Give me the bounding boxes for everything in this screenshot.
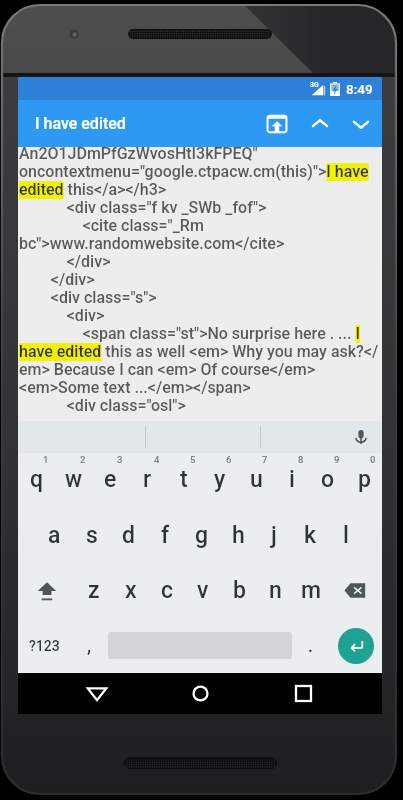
button[interactable]: z: [75, 563, 112, 618]
button[interactable]: v: [185, 563, 221, 618]
staticText: m: [301, 577, 322, 604]
staticText: c: [161, 577, 174, 604]
staticText: I have edited: [35, 114, 126, 133]
staticText: 4: [154, 454, 160, 465]
staticText: p: [358, 466, 371, 493]
staticText: 8: [298, 454, 304, 465]
button[interactable]: s: [73, 508, 110, 563]
staticText: j: [271, 522, 277, 549]
staticText: e: [104, 466, 117, 493]
button[interactable]: c: [149, 563, 185, 618]
staticText: 3G: [310, 81, 319, 89]
button[interactable]: a: [36, 508, 73, 563]
staticText: 5: [190, 454, 196, 465]
staticText: i: [289, 466, 295, 493]
button[interactable]: g: [184, 508, 220, 563]
button[interactable]: 9: [310, 453, 346, 508]
staticText: .: [308, 635, 314, 656]
staticText: y: [214, 466, 226, 493]
staticText: 6: [226, 454, 232, 465]
button[interactable]: 4: [129, 453, 166, 508]
staticText: q: [30, 466, 44, 493]
button[interactable]: 6: [202, 453, 238, 508]
button[interactable]: m: [293, 563, 329, 618]
staticText: 2: [80, 454, 86, 465]
button[interactable]: l: [328, 508, 364, 563]
staticText: 7: [262, 454, 268, 465]
button[interactable]: Shift: [18, 563, 75, 618]
staticText: x: [125, 577, 137, 604]
staticText: u: [250, 466, 263, 493]
staticText: w: [65, 466, 83, 493]
button[interactable]: b: [221, 563, 257, 618]
staticText: k: [304, 522, 316, 549]
button[interactable]: f: [147, 508, 184, 563]
staticText: 0: [370, 454, 376, 465]
button[interactable]: ?123: [18, 618, 70, 673]
button[interactable]: 8: [274, 453, 310, 508]
button[interactable]: j: [256, 508, 292, 563]
button[interactable]: 1: [18, 453, 55, 508]
button[interactable]: k: [292, 508, 328, 563]
button[interactable]: Enter: [338, 628, 374, 664]
button[interactable]: Find next: [338, 101, 384, 147]
button[interactable]: 5: [166, 453, 202, 508]
button[interactable]: 2: [55, 453, 92, 508]
button[interactable]: n: [257, 563, 293, 618]
button[interactable]: x: [112, 563, 149, 618]
staticText: ,: [87, 635, 92, 656]
button[interactable]: 7: [238, 453, 274, 508]
staticText: o: [321, 466, 335, 493]
staticText: ?123: [29, 638, 60, 654]
button[interactable]: Home: [174, 673, 226, 714]
staticText: 3: [117, 454, 123, 465]
button[interactable]: h: [220, 508, 256, 563]
button[interactable]: Backspace: [329, 563, 382, 618]
button[interactable]: .: [292, 618, 330, 673]
button[interactable]: d: [110, 508, 147, 563]
staticText: z: [88, 577, 100, 604]
staticText: An2O1JDmPfGzWvosHtI3kFPEQ" oncontextmenu…: [19, 147, 379, 415]
button[interactable]: ,: [70, 618, 108, 673]
staticText: b: [233, 577, 246, 604]
button[interactable]: Recent apps: [277, 673, 329, 714]
staticText: l: [343, 522, 349, 549]
staticText: v: [197, 577, 209, 604]
staticText: a: [48, 522, 61, 549]
staticText: 1: [43, 454, 49, 465]
staticText: t: [180, 466, 188, 493]
staticText: d: [122, 522, 135, 549]
button[interactable]: 3: [92, 453, 129, 508]
button[interactable]: Back: [71, 673, 123, 714]
button[interactable]: 0: [346, 453, 382, 508]
staticText: 8:49: [346, 81, 373, 97]
staticText: h: [232, 522, 245, 549]
button[interactable]: Find previous: [297, 101, 343, 147]
button[interactable]: Open in browser: [254, 101, 300, 147]
staticText: 9: [334, 454, 340, 465]
staticText: n: [269, 577, 282, 604]
button[interactable]: Voice input: [348, 424, 374, 450]
staticText: g: [195, 522, 209, 549]
staticText: f: [161, 522, 170, 549]
staticText: r: [143, 466, 152, 493]
staticText: s: [86, 522, 98, 549]
